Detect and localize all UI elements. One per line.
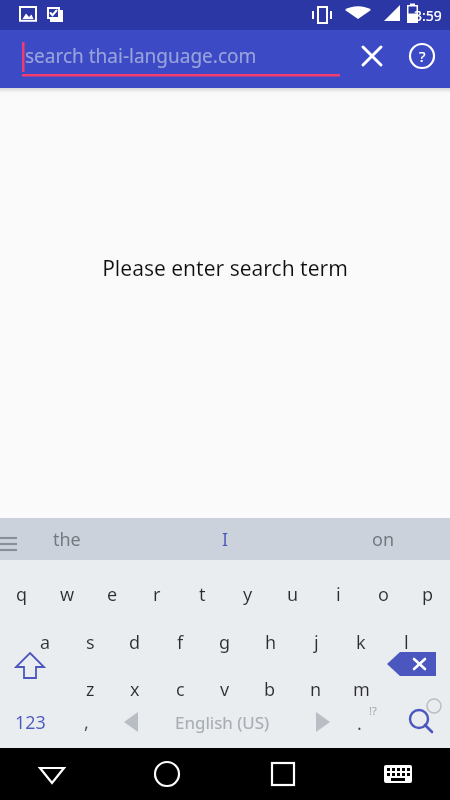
button[interactable]: f (158, 619, 202, 665)
staticText: search thai-language.com (25, 43, 257, 69)
button[interactable]: w (45, 571, 89, 617)
button[interactable]: r (135, 571, 179, 617)
button[interactable]: Back (28, 750, 76, 798)
staticText: a (40, 630, 51, 655)
button[interactable]: Clear (352, 39, 392, 79)
button[interactable]: v (203, 666, 247, 712)
button[interactable]: . (357, 711, 362, 736)
staticText: k (356, 630, 366, 655)
button[interactable]: 123 (15, 710, 46, 735)
staticText: o (378, 582, 389, 607)
button[interactable]: n (294, 666, 338, 712)
button[interactable]: English (US) (175, 711, 270, 734)
staticText: y (243, 582, 253, 607)
button[interactable]: y (226, 571, 270, 617)
button[interactable]: a (23, 619, 67, 665)
staticText: p (422, 582, 434, 607)
staticText: e (107, 582, 118, 607)
staticText: h (265, 630, 277, 655)
staticText: !? (369, 703, 377, 718)
button[interactable]: Menu (0, 522, 34, 556)
button[interactable]: Help (402, 39, 442, 79)
button[interactable]: j (294, 619, 338, 665)
button[interactable]: c (158, 666, 202, 712)
staticText: d (129, 630, 141, 655)
staticText: j (314, 630, 319, 655)
button[interactable]: h (249, 619, 293, 665)
staticText: z (86, 677, 95, 702)
button[interactable]: q (0, 571, 44, 617)
button[interactable]: Switch keyboard (374, 750, 422, 798)
staticText: l (404, 630, 409, 655)
staticText: Please enter search term (102, 254, 348, 283)
button[interactable]: z (68, 666, 112, 712)
staticText: c (176, 677, 185, 702)
staticText: q (16, 582, 28, 607)
staticText: the (53, 527, 81, 552)
button[interactable]: k (339, 619, 383, 665)
staticText: f (177, 630, 184, 655)
button[interactable]: t (180, 571, 224, 617)
staticText: n (310, 677, 322, 702)
button[interactable]: d (113, 619, 157, 665)
staticText: w (60, 582, 75, 607)
staticText: s (86, 630, 95, 655)
staticText: on (372, 527, 395, 552)
staticText: m (353, 677, 370, 702)
button[interactable]: o (361, 571, 405, 617)
button[interactable]: Recents (259, 750, 307, 798)
button[interactable]: u (271, 571, 315, 617)
staticText: b (264, 677, 276, 702)
button[interactable]: i (316, 571, 360, 617)
staticText: I (222, 527, 229, 552)
button[interactable]: , (84, 710, 89, 735)
button[interactable]: Home (143, 750, 191, 798)
staticText: i (336, 582, 341, 607)
staticText: u (287, 582, 299, 607)
button[interactable]: e (90, 571, 134, 617)
staticText: v (220, 677, 230, 702)
button[interactable]: Backspace (385, 650, 441, 698)
button[interactable]: Shift (8, 650, 56, 698)
button[interactable]: g (203, 619, 247, 665)
staticText: g (219, 630, 231, 655)
staticText: r (153, 582, 161, 607)
button[interactable]: m (339, 666, 383, 712)
staticText: ? (419, 46, 426, 66)
button[interactable]: Search (400, 700, 444, 744)
button[interactable]: x (113, 666, 157, 712)
staticText: 3:59 (414, 6, 442, 25)
button[interactable]: p (406, 571, 450, 617)
button[interactable]: s (68, 619, 112, 665)
button[interactable]: l (384, 619, 428, 665)
staticText: t (199, 582, 206, 607)
staticText: x (130, 677, 140, 702)
button[interactable]: b (248, 666, 292, 712)
